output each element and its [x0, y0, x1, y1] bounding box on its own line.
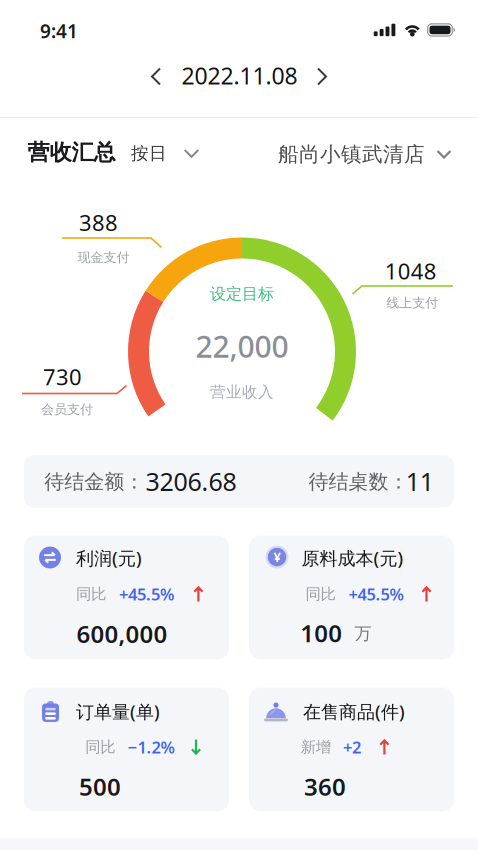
staticText: 360	[304, 770, 346, 803]
staticText: 22,000	[195, 326, 288, 366]
button[interactable]: ¥	[249, 535, 454, 659]
button[interactable]: 2022.11.08	[181, 60, 297, 91]
staticText: 万	[354, 623, 371, 644]
staticText: 现金支付	[77, 249, 129, 266]
staticText: 同比	[85, 737, 115, 757]
staticText: 11	[406, 464, 434, 498]
staticText: 3206.68	[145, 464, 236, 498]
button[interactable]: 利润(元)	[24, 535, 229, 659]
staticText: 2022.11.08	[181, 60, 297, 91]
button[interactable]: 按日	[131, 142, 199, 164]
staticText: 利润(元)	[76, 546, 142, 570]
staticText: −1.2%	[128, 736, 175, 758]
staticText: 730	[43, 362, 82, 392]
staticText: 线上支付	[386, 295, 438, 311]
staticText: 388	[79, 207, 118, 237]
button[interactable]: 订单量(单)	[24, 687, 229, 811]
staticText: 按日	[131, 142, 167, 164]
staticText: 同比	[305, 584, 335, 604]
staticText: 营业收入	[210, 382, 274, 402]
staticText: 新增	[301, 737, 331, 757]
button[interactable]: Next day	[316, 68, 327, 85]
staticText: 待结桌数：	[308, 469, 408, 494]
staticText: 会员支付	[41, 401, 93, 418]
staticText: 营收汇总	[27, 139, 115, 166]
staticText: 600,000	[76, 617, 167, 650]
button[interactable]: 待结金额：	[24, 455, 454, 508]
button[interactable]: 在售商品(件)	[249, 687, 454, 811]
staticText: 同比	[76, 584, 106, 604]
staticText: 待结金额：	[44, 469, 144, 494]
staticText: 在售商品(件)	[303, 699, 405, 724]
staticText: 设定目标	[210, 284, 274, 304]
staticText: ¥	[273, 548, 280, 566]
staticText: 船尚小镇武清店	[278, 142, 425, 167]
staticText: 订单量(单)	[76, 699, 160, 724]
button[interactable]: 船尚小镇武清店	[278, 142, 451, 167]
staticText: +45.5%	[348, 583, 403, 605]
staticText: 9:41	[40, 18, 78, 44]
staticText: 原料成本(元)	[301, 546, 403, 570]
button[interactable]: Previous day	[150, 68, 161, 85]
staticText: 500	[79, 770, 121, 803]
staticText: 1048	[385, 256, 437, 286]
staticText: 100	[300, 617, 342, 649]
staticText: +45.5%	[119, 583, 174, 605]
staticText: +2	[343, 736, 361, 758]
